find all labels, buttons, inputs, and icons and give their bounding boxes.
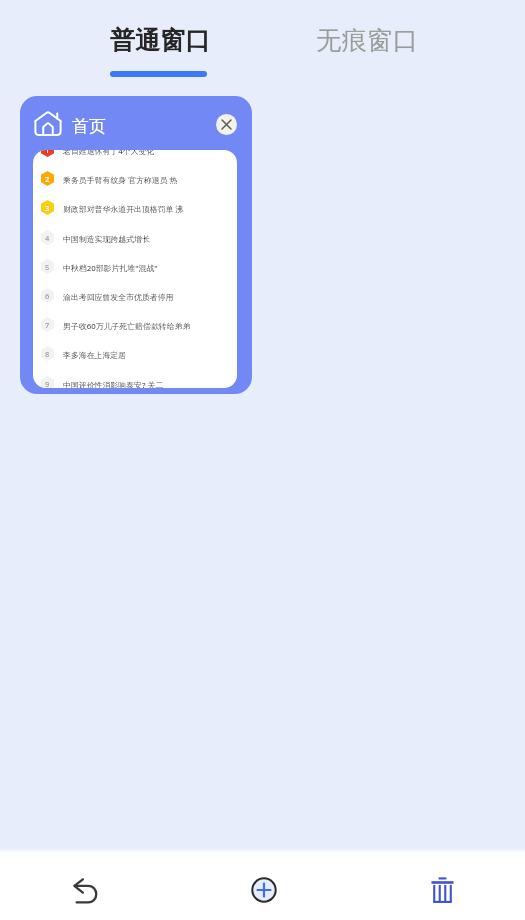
staticText: 老百姓退休有了4个大变化 — [63, 150, 155, 157]
button[interactable]: Home — [20, 96, 252, 394]
staticText: 中国制造实现跨越式增长 — [63, 234, 150, 244]
staticText: 2 — [45, 174, 50, 184]
staticText: 3 — [45, 203, 50, 213]
button[interactable]: Back — [41, 859, 131, 920]
staticText: 男子收60万儿子死亡赔偿款转给弟弟 — [63, 321, 191, 332]
button[interactable]: 5 — [33, 252, 237, 281]
button[interactable]: Close all tabs — [397, 858, 487, 920]
button[interactable]: New tab — [219, 858, 309, 920]
other: Home — [34, 111, 62, 136]
button[interactable]: 1 — [33, 150, 237, 164]
staticText: 9 — [45, 379, 50, 388]
button[interactable]: 3 — [33, 193, 237, 222]
staticText: 1 — [45, 150, 50, 155]
button[interactable]: 无痕窗口 — [306, 10, 427, 86]
staticText: 4 — [45, 233, 50, 243]
button[interactable]: 2 — [33, 164, 237, 193]
button[interactable]: 4 — [33, 223, 237, 252]
staticText: 财政部对普华永道开出顶格罚单 沸 — [63, 204, 184, 215]
button[interactable]: 8 — [33, 339, 237, 368]
staticText: 5 — [45, 262, 50, 272]
staticText: 乘务员手臂有纹身 官方称退员 热 — [63, 175, 178, 186]
staticText: 8 — [45, 349, 50, 359]
button[interactable]: 普通窗口 — [100, 10, 220, 86]
button[interactable]: 9 — [33, 369, 237, 388]
staticText: 7 — [45, 320, 50, 330]
button[interactable]: 6 — [33, 281, 237, 310]
staticText: 中国评价性消影响泰安? 关二 — [63, 380, 164, 388]
staticText: 李多海在上海定居 — [63, 350, 127, 360]
staticText: 首页 — [72, 116, 106, 137]
staticText: 无痕窗口 — [316, 24, 418, 56]
staticText: 中秋档20部影片扎堆"混战" — [63, 263, 158, 274]
staticText: 普通窗口 — [110, 25, 210, 56]
staticText: 渝出考回应曾发全市优质者停用 — [63, 292, 174, 302]
button[interactable]: 7 — [33, 310, 237, 339]
staticText: 6 — [45, 291, 50, 301]
button[interactable]: Close tab — [216, 114, 237, 135]
